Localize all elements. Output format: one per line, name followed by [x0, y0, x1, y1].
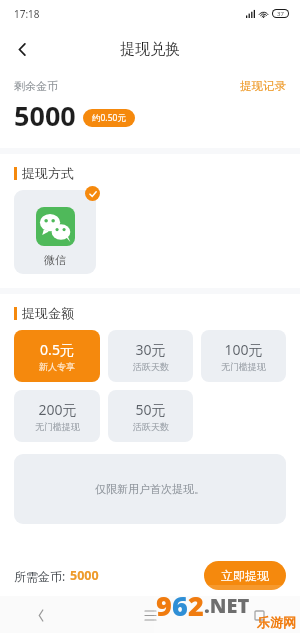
- button[interactable]: Home: [244, 600, 274, 630]
- staticText: 活跃天数: [133, 421, 169, 432]
- staticText: 5000: [14, 97, 76, 134]
- staticText: 提现记录: [240, 79, 286, 93]
- staticText: 新人专享: [39, 361, 75, 372]
- staticText: 提现兑换: [120, 40, 180, 59]
- staticText: 37: [277, 10, 284, 17]
- staticText: 50元: [135, 400, 166, 419]
- staticText: 微信: [44, 253, 66, 267]
- staticText: 5000: [70, 567, 99, 584]
- staticText: 9: [156, 587, 172, 624]
- staticText: 提现金额: [22, 305, 74, 321]
- button[interactable]: 立即提现: [204, 561, 286, 590]
- staticText: 200元: [38, 400, 77, 419]
- staticText: 乐游网: [257, 614, 296, 630]
- staticText: 无门槛提现: [35, 421, 80, 432]
- button[interactable]: 100元: [201, 330, 286, 382]
- staticText: 100元: [224, 340, 263, 359]
- button[interactable]: 微信: [14, 190, 96, 274]
- staticText: 30元: [135, 340, 166, 359]
- button[interactable]: Back: [26, 600, 56, 630]
- staticText: 所需金币:: [14, 568, 66, 584]
- button[interactable]: 200元: [14, 390, 100, 442]
- staticText: 6: [172, 587, 188, 624]
- staticText: 0.5元: [40, 340, 74, 359]
- button[interactable]: 30元: [108, 330, 193, 382]
- staticText: 2: [188, 587, 204, 624]
- staticText: 活跃天数: [133, 361, 169, 372]
- staticText: 约0.50元: [92, 112, 126, 124]
- staticText: 提现方式: [22, 165, 74, 181]
- staticText: 立即提现: [221, 568, 269, 583]
- staticText: 17:18: [14, 7, 40, 21]
- staticText: 仅限新用户首次提现。: [95, 482, 205, 496]
- staticText: 剩余金币: [14, 79, 58, 93]
- button[interactable]: Recents: [135, 600, 165, 630]
- staticText: .NET: [204, 592, 250, 619]
- button[interactable]: 50元: [108, 390, 193, 442]
- button[interactable]: 0.5元: [14, 330, 100, 382]
- staticText: 无门槛提现: [221, 361, 266, 372]
- button[interactable]: Back: [0, 27, 44, 71]
- button[interactable]: 提现记录: [240, 79, 286, 93]
